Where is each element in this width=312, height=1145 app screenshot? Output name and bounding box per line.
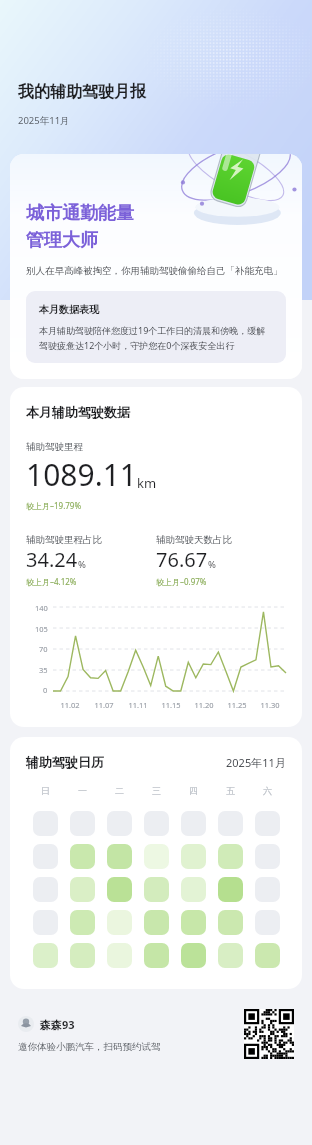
staticText: 76.67 [156, 546, 208, 573]
button[interactable] [218, 811, 243, 836]
button[interactable] [70, 844, 95, 869]
staticText: 11.30 [260, 700, 280, 710]
button[interactable] [144, 811, 169, 836]
button[interactable] [255, 910, 280, 935]
staticText: 辅助驾驶里程占比 [26, 534, 102, 546]
button[interactable]: 本月辅助驾驶数据 [10, 387, 302, 727]
staticText: 较上月–4.12% [26, 576, 77, 587]
staticText: 34.24 [26, 546, 78, 573]
button[interactable] [144, 943, 169, 968]
staticText: 较上月–19.79% [26, 500, 82, 511]
button[interactable] [33, 811, 58, 836]
staticText: 日 [41, 785, 50, 796]
staticText: 11.15 [161, 700, 181, 710]
button[interactable] [33, 943, 58, 968]
button[interactable] [144, 844, 169, 869]
staticText: 35 [39, 665, 48, 675]
button[interactable] [255, 844, 280, 869]
button[interactable] [70, 943, 95, 968]
staticText: 0 [43, 685, 48, 695]
staticText: 别人在早高峰被掏空，你用辅助驾驶偷偷给自己「补能充电」 [26, 265, 283, 277]
button[interactable]: 辅助驾驶日历 [10, 737, 302, 989]
staticText: 邀你体验小鹏汽车，扫码预约试驾 [18, 1041, 161, 1053]
button[interactable] [107, 877, 132, 902]
button[interactable] [33, 844, 58, 869]
button[interactable] [70, 910, 95, 935]
staticText: % [208, 558, 216, 571]
button[interactable] [33, 877, 58, 902]
staticText: 105 [35, 624, 48, 634]
button[interactable] [107, 844, 132, 869]
button[interactable] [255, 943, 280, 968]
staticText: 五 [226, 785, 235, 796]
staticText: 我的辅助驾驶月报 [18, 82, 146, 102]
button[interactable] [107, 943, 132, 968]
staticText: 辅助驾驶里程 [26, 441, 83, 453]
staticText: 本月数据表现 [39, 303, 99, 316]
staticText: 森森93 [40, 1017, 75, 1032]
button[interactable] [33, 910, 58, 935]
button[interactable] [70, 811, 95, 836]
button[interactable] [181, 910, 206, 935]
staticText: 11.07 [94, 700, 114, 710]
button[interactable] [255, 811, 280, 836]
button[interactable] [70, 877, 95, 902]
button[interactable] [107, 910, 132, 935]
staticText: 1089.11 [26, 454, 137, 495]
staticText: 2025年11月 [226, 755, 286, 770]
staticText: 140 [35, 603, 48, 613]
button[interactable] [255, 877, 280, 902]
button[interactable] [181, 811, 206, 836]
button[interactable] [181, 877, 206, 902]
staticText: 二 [115, 785, 124, 796]
staticText: 辅助驾驶日历 [26, 754, 104, 770]
button[interactable] [181, 844, 206, 869]
button[interactable] [218, 910, 243, 935]
other: User avatar [18, 1016, 34, 1032]
staticText: 2025年11月 [18, 114, 70, 127]
button[interactable] [144, 910, 169, 935]
staticText: 城市通勤能量 [26, 202, 134, 225]
staticText: 一 [78, 785, 87, 796]
button[interactable]: User avatar [18, 1016, 75, 1032]
staticText: 70 [39, 644, 48, 654]
staticText: km [137, 474, 157, 492]
button[interactable] [144, 877, 169, 902]
staticText: 11.11 [128, 700, 148, 710]
button[interactable] [181, 943, 206, 968]
staticText: 11.25 [227, 700, 247, 710]
staticText: 11.02 [60, 700, 80, 710]
staticText: 本月辅助驾驶数据 [26, 404, 130, 420]
button[interactable]: 城市通勤能量 [10, 154, 302, 379]
button[interactable] [218, 943, 243, 968]
staticText: 三 [152, 785, 161, 796]
button[interactable] [218, 844, 243, 869]
staticText: 辅助驾驶天数占比 [156, 534, 232, 546]
staticText: 较上月–0.97% [156, 576, 207, 587]
staticText: 本月辅助驾驶陪伴您度过19个工作日的清晨和傍晚，缓解驾驶疲惫达12个小时，守护您… [39, 324, 273, 351]
staticText: 11.20 [194, 700, 214, 710]
button[interactable] [218, 877, 243, 902]
staticText: 四 [189, 785, 198, 796]
button[interactable]: QR code [244, 1009, 294, 1059]
staticText: % [78, 558, 86, 571]
staticText: 六 [263, 785, 272, 796]
staticText: 管理大师 [26, 229, 98, 252]
button[interactable] [107, 811, 132, 836]
